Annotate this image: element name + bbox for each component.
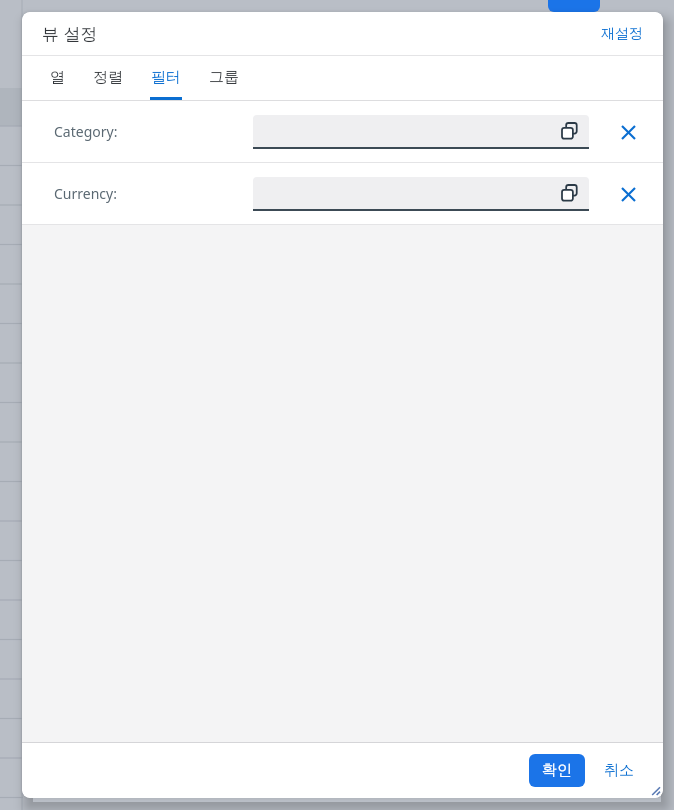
- button[interactable]: 확인: [529, 754, 585, 787]
- staticText: 뷰 설정: [42, 22, 98, 45]
- button[interactable]: 그룹: [195, 56, 253, 100]
- button[interactable]: 재설정: [595, 19, 649, 49]
- staticText: 취소: [604, 761, 634, 780]
- button[interactable]: 취소: [593, 754, 645, 787]
- staticText: 정렬: [93, 68, 123, 87]
- button[interactable]: 정렬: [79, 56, 137, 100]
- staticText: Category:: [54, 122, 118, 141]
- button[interactable]: 필터: [137, 56, 195, 100]
- button[interactable]: Value help input: [253, 177, 589, 211]
- button[interactable]: Remove filter: [611, 177, 645, 211]
- staticText: 그룹: [209, 68, 239, 87]
- staticText: 확인: [542, 761, 572, 780]
- staticText: Currency:: [54, 184, 117, 203]
- staticText: 열: [50, 68, 65, 87]
- button[interactable]: Action: [548, 0, 600, 12]
- button[interactable]: Value help input: [253, 115, 589, 149]
- button[interactable]: 열: [36, 56, 79, 100]
- button[interactable]: Remove filter: [611, 115, 645, 149]
- staticText: 필터: [151, 68, 181, 87]
- staticText: 재설정: [601, 25, 643, 43]
